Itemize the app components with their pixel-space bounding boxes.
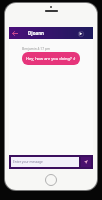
- button[interactable]: Video call: [75, 28, 86, 39]
- staticText: Benjamin 4:17 pm: [22, 46, 51, 50]
- button[interactable]: Hey, how are you doing? :): [26, 56, 76, 61]
- button[interactable]: Enter your message: [13, 157, 77, 167]
- staticText: Enter your message: [13, 160, 43, 164]
- staticText: Hey, how are you doing? :): [26, 56, 76, 61]
- staticText: Djoann: [28, 30, 44, 36]
- button[interactable]: Send: [81, 157, 91, 167]
- button[interactable]: Back: [9, 27, 21, 39]
